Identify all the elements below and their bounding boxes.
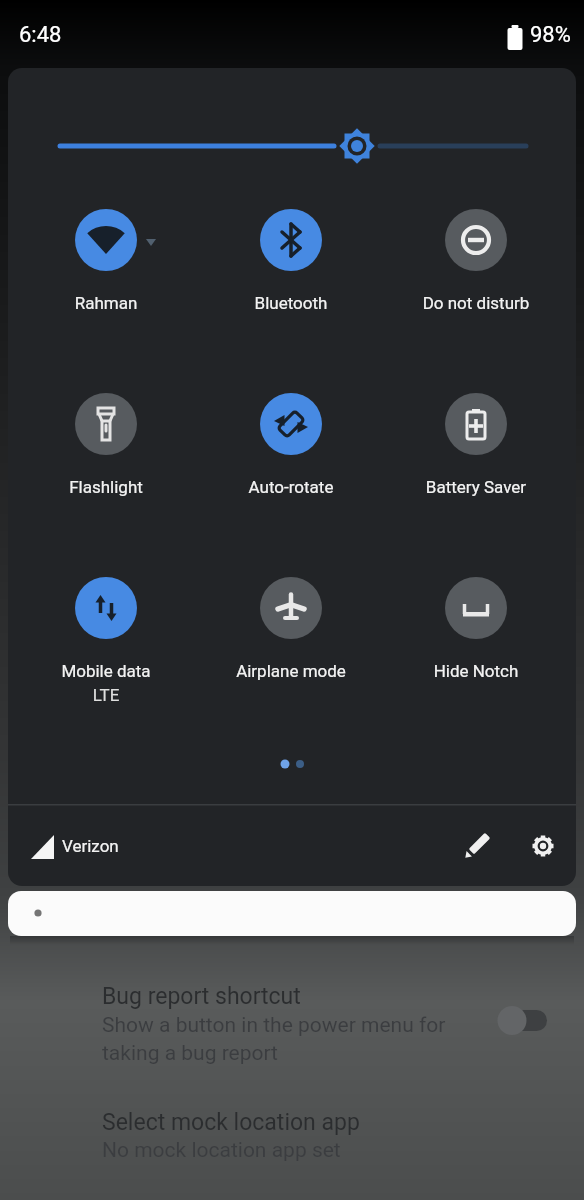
staticText: Verizon [62, 836, 119, 856]
staticText: Hide Notch [386, 661, 566, 681]
staticText: Select mock location app [102, 1109, 360, 1136]
button[interactable] [457, 826, 497, 866]
button[interactable]: Rahman [16, 209, 196, 357]
staticText: Do not disturb [386, 293, 566, 313]
staticText: LTE [16, 685, 196, 705]
staticText: Show a button in the power menu for [102, 1013, 446, 1038]
staticText: Auto-rotate [201, 477, 381, 497]
button[interactable]: Do not disturb [386, 209, 566, 357]
staticText: Flashlight [16, 477, 196, 497]
button[interactable]: Battery Saver [386, 393, 566, 541]
staticText: 6:48 [19, 22, 62, 48]
button[interactable]: Auto-rotate [201, 393, 381, 541]
staticText: 98% [530, 22, 571, 48]
button[interactable] [8, 891, 576, 936]
button[interactable]: Mobile data [16, 577, 196, 725]
button[interactable]: Bluetooth [201, 209, 381, 357]
staticText: Bluetooth [201, 293, 381, 313]
staticText: Mobile data [16, 661, 196, 681]
button[interactable]: Hide Notch [386, 577, 566, 725]
button[interactable] [523, 826, 563, 866]
staticText: Battery Saver [386, 477, 566, 497]
button[interactable]: Airplane mode [201, 577, 381, 725]
staticText: Airplane mode [201, 661, 381, 681]
button[interactable] [492, 1002, 554, 1038]
staticText: Rahman [16, 293, 196, 313]
button[interactable] [8, 68, 576, 228]
staticText: No mock location app set [102, 1138, 341, 1163]
staticText: taking a bug report [102, 1041, 278, 1066]
staticText: Bug report shortcut [102, 983, 301, 1010]
button[interactable]: Flashlight [16, 393, 196, 541]
